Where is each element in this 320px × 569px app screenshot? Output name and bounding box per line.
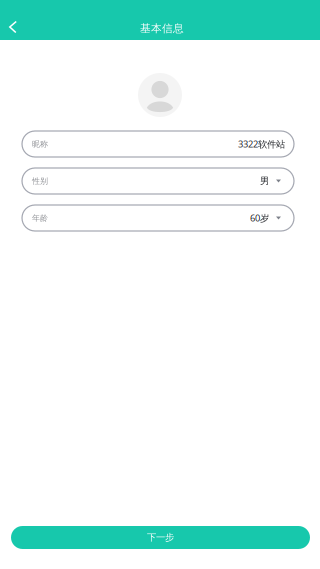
staticText: 基本信息 <box>140 22 184 35</box>
button[interactable]: 性别 <box>22 168 294 194</box>
button[interactable]: 年龄 <box>22 205 294 231</box>
staticText: 性别 <box>32 176 48 186</box>
staticText: 下一步 <box>147 532 174 543</box>
staticText: 男 <box>260 175 269 187</box>
staticText: 60岁 <box>250 212 269 224</box>
button[interactable]: 昵称 <box>22 131 294 157</box>
button[interactable]: 下一步 <box>11 526 310 549</box>
button[interactable]: Back <box>2 16 24 38</box>
staticText: 年龄 <box>32 213 48 223</box>
staticText: 3322软件站 <box>238 138 285 150</box>
staticText: 昵称 <box>32 139 48 149</box>
